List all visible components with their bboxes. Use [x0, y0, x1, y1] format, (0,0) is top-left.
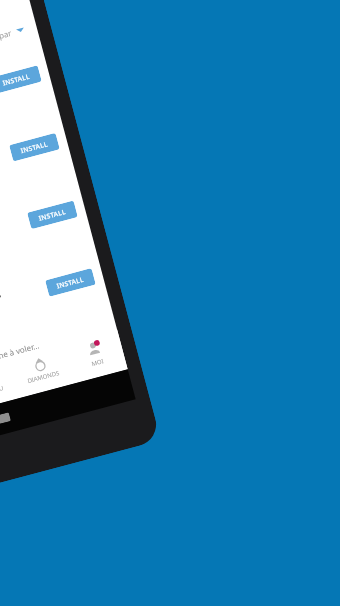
- staticText: INSTALL: [2, 72, 31, 87]
- button[interactable]: INSTALL: [9, 133, 60, 162]
- button[interactable]: Montres de luxe: [0, 172, 93, 304]
- button[interactable]: DIAMONDS: [9, 344, 71, 388]
- staticText: Trier par: [0, 27, 14, 46]
- staticText: INSTALL: [38, 207, 67, 223]
- button[interactable]: Trier par: [0, 21, 29, 48]
- button[interactable]: Bijoux créateur: [0, 104, 75, 236]
- button[interactable]: NOUVEAU: [0, 358, 17, 403]
- button[interactable]: INSTALL: [45, 268, 96, 297]
- button[interactable]: Coiffure à domicile: [0, 37, 57, 169]
- other: MOI: [85, 339, 103, 358]
- button[interactable]: INSTALL: [0, 65, 42, 94]
- staticText: Diamants certifiés: [0, 286, 3, 322]
- staticText: MOI: [90, 357, 105, 368]
- staticText: DIAMONDS: [26, 369, 60, 385]
- other: DIAMONDS: [30, 354, 49, 372]
- staticText: INSTALL: [56, 274, 85, 290]
- staticText: La bague de la reine à voler…: [0, 339, 41, 378]
- staticText: NOUVEAU: [0, 384, 4, 399]
- button[interactable]: La bague de la reine à voler…: [0, 307, 129, 439]
- button[interactable]: INSTALL: [27, 200, 78, 229]
- button[interactable]: MOI: [63, 330, 125, 374]
- staticText: INSTALL: [20, 139, 49, 155]
- button[interactable]: Diamants certifiés: [0, 240, 111, 372]
